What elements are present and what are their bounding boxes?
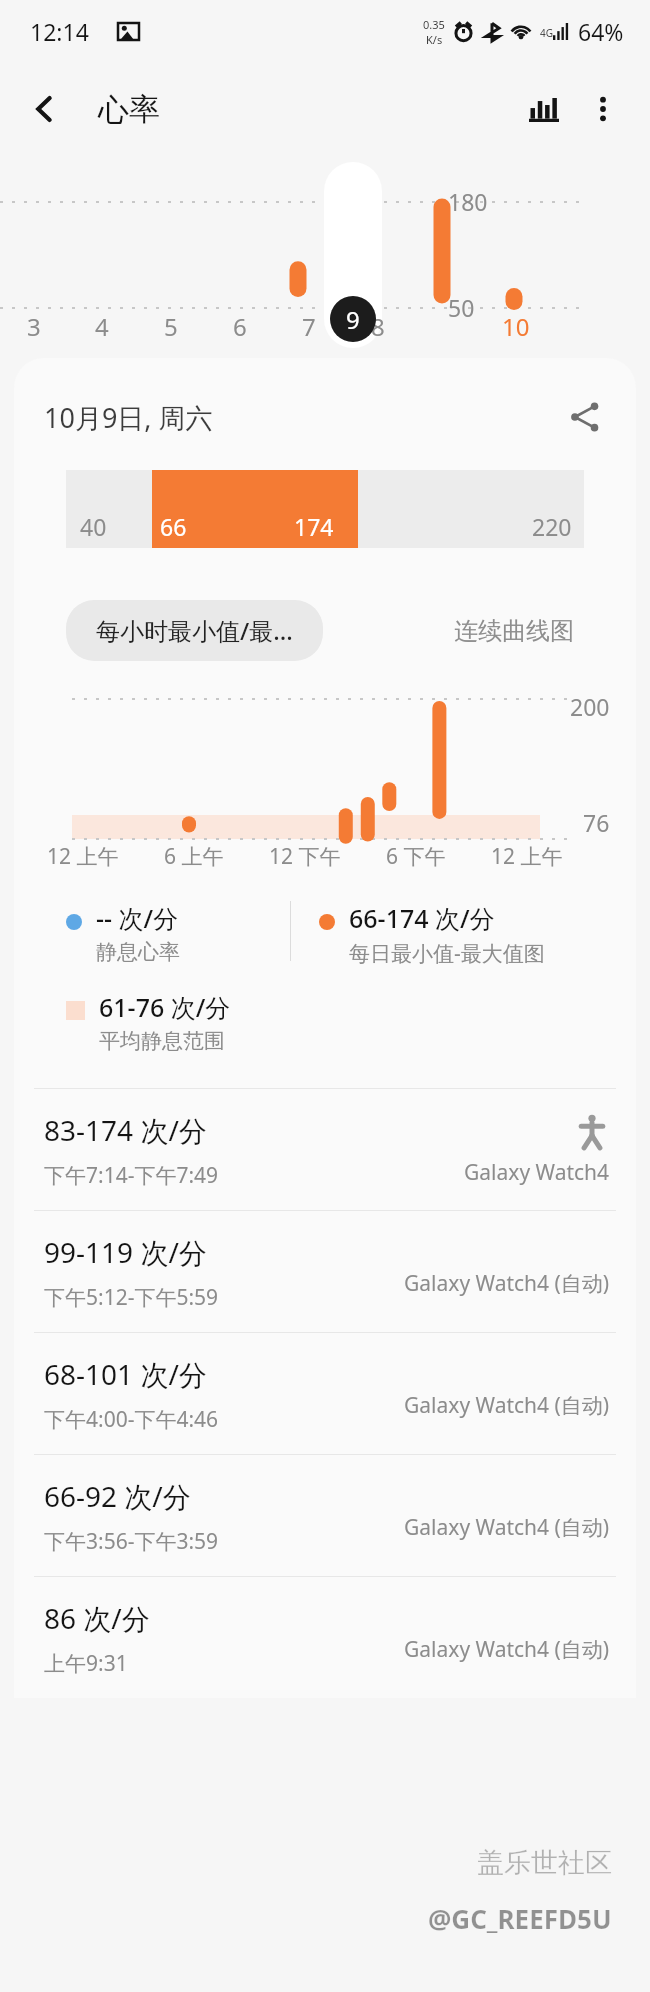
- staticText: 76: [583, 807, 610, 838]
- staticText: 下午3:56-下午3:59: [44, 1527, 219, 1556]
- staticText: @GC_REEFD5U: [428, 1901, 612, 1936]
- staticText: 174: [294, 511, 334, 542]
- staticText: 静息心率: [96, 939, 180, 965]
- button[interactable]: More options: [574, 80, 632, 138]
- staticText: 12 下午: [269, 842, 341, 871]
- staticText: 下午5:12-下午5:59: [44, 1283, 219, 1312]
- staticText: Galaxy Watch4 (自动): [404, 1269, 610, 1298]
- staticText: 50: [448, 292, 475, 323]
- staticText: 10月9日, 周六: [44, 399, 213, 436]
- staticText: 心率: [98, 90, 160, 129]
- button[interactable]: 68-101 次/分: [14, 1333, 636, 1454]
- staticText: 连续曲线图: [454, 616, 574, 646]
- staticText: 每日最小值-最大值图: [349, 939, 545, 968]
- button[interactable]: 99-119 次/分: [14, 1211, 636, 1332]
- staticText: -- 次/分: [96, 901, 179, 935]
- staticText: 12 上午: [47, 842, 119, 871]
- staticText: 64%: [578, 16, 624, 47]
- staticText: 86 次/分: [44, 1599, 150, 1637]
- staticText: 12 上午: [491, 842, 563, 871]
- staticText: 10: [502, 310, 530, 343]
- button[interactable]: 66-92 次/分: [14, 1455, 636, 1576]
- staticText: 下午7:14-下午7:49: [44, 1161, 219, 1190]
- staticText: 6 下午: [386, 842, 446, 871]
- staticText: Galaxy Watch4 (自动): [404, 1391, 610, 1420]
- staticText: 61-76 次/分: [99, 990, 231, 1024]
- staticText: 66-92 次/分: [44, 1477, 191, 1515]
- staticText: 4: [95, 310, 109, 343]
- staticText: 83-174 次/分: [44, 1111, 207, 1149]
- staticText: K/s: [426, 32, 443, 47]
- staticText: 下午4:00-下午4:46: [44, 1405, 219, 1434]
- staticText: 66-174 次/分: [349, 901, 495, 935]
- staticText: 9: [346, 303, 360, 336]
- staticText: 6 上午: [164, 842, 224, 871]
- button[interactable]: [324, 162, 382, 348]
- button[interactable]: 86 次/分: [14, 1577, 636, 1698]
- button[interactable]: 连续曲线图: [436, 602, 592, 660]
- staticText: Galaxy Watch4 (自动): [404, 1635, 610, 1664]
- staticText: 66: [160, 511, 187, 542]
- button[interactable]: Share: [556, 388, 614, 446]
- staticText: 40: [80, 511, 107, 542]
- staticText: 3: [27, 310, 41, 343]
- staticText: 99-119 次/分: [44, 1233, 207, 1271]
- staticText: 5: [164, 310, 178, 343]
- staticText: 8: [371, 310, 385, 343]
- staticText: Galaxy Watch4 (自动): [404, 1513, 610, 1542]
- staticText: 6: [233, 310, 247, 343]
- staticText: 12:14: [30, 16, 89, 47]
- staticText: 220: [532, 511, 572, 542]
- button[interactable]: 83-174 次/分: [14, 1089, 636, 1210]
- staticText: 平均静息范围: [99, 1028, 225, 1054]
- staticText: 每小时最小值/最...: [96, 614, 293, 647]
- staticText: 盖乐世社区: [477, 1846, 612, 1880]
- staticText: 68-101 次/分: [44, 1355, 207, 1393]
- button[interactable]: Back: [16, 80, 74, 138]
- button[interactable]: Statistics: [514, 79, 574, 139]
- button[interactable]: 每小时最小值/最...: [66, 600, 323, 661]
- staticText: 0.35: [423, 17, 445, 32]
- staticText: 180: [448, 186, 488, 217]
- staticText: 4G: [540, 26, 553, 40]
- staticText: Galaxy Watch4: [464, 1158, 610, 1187]
- staticText: 上午9:31: [44, 1649, 128, 1678]
- staticText: 7: [302, 310, 316, 343]
- staticText: 200: [570, 691, 610, 722]
